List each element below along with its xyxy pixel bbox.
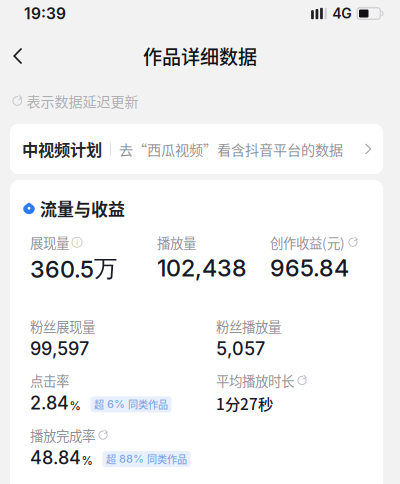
button[interactable]: 返回 <box>0 36 53 76</box>
staticText: 粉丝展现量 <box>30 316 95 336</box>
staticText: 流量与收益 <box>40 196 125 220</box>
staticText: % <box>69 399 80 413</box>
staticText: 360.5万 <box>30 254 117 283</box>
staticText: 去“西瓜视频”看含抖音平台的数据 <box>119 139 343 159</box>
staticText: 88% <box>116 452 147 465</box>
staticText: 48.84 <box>30 447 81 469</box>
staticText: 5,057 <box>216 338 265 360</box>
staticText: 19:39 <box>24 4 66 23</box>
staticText: 展现量 <box>30 232 69 252</box>
staticText: 102,438 <box>157 254 247 282</box>
staticText: 1分27秒 <box>216 392 273 414</box>
staticText: 粉丝播放量 <box>216 316 281 336</box>
staticText: 99,597 <box>30 338 89 360</box>
staticText: 点击率 <box>30 371 69 390</box>
staticText: 作品详细数据 <box>143 42 257 70</box>
staticText: 6% <box>104 397 128 411</box>
staticText: 表示数据延迟更新 <box>26 91 138 111</box>
staticText: 超 <box>94 397 104 411</box>
staticText: 播放完成率 <box>30 425 95 445</box>
staticText: 创作收益(元) <box>270 232 345 252</box>
button[interactable]: 中视频计划 <box>0 124 400 174</box>
staticText: 同类作品 <box>147 451 187 466</box>
staticText: % <box>81 454 92 468</box>
staticText: 中视频计划 <box>22 137 102 161</box>
staticText: i <box>76 237 78 247</box>
staticText: 2.84 <box>30 392 69 414</box>
staticText: 同类作品 <box>128 397 168 411</box>
staticText: 平均播放时长 <box>216 371 294 390</box>
staticText: 965.84 <box>270 254 349 282</box>
staticText: 4G <box>332 5 351 22</box>
staticText: 播放量 <box>157 232 196 252</box>
staticText: 超 <box>106 451 116 466</box>
